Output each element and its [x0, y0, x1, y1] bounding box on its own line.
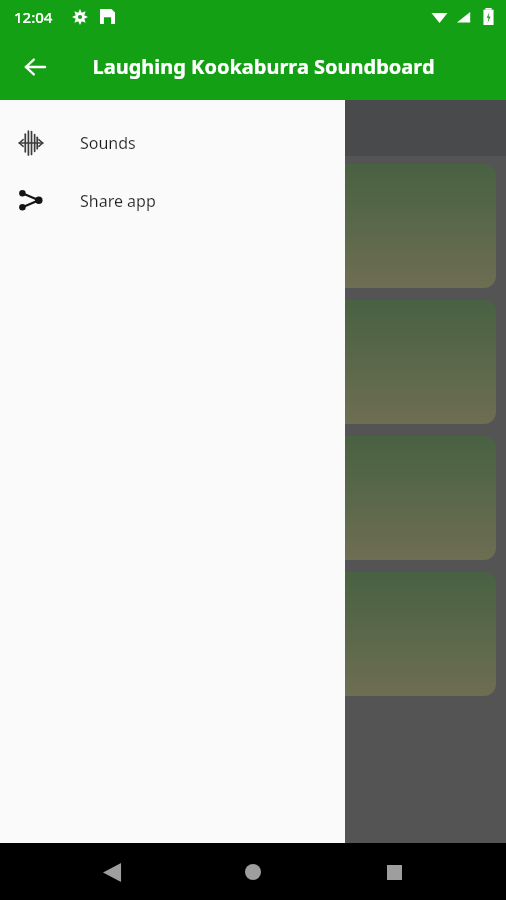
button[interactable]: Back [92, 852, 132, 892]
button[interactable]: 8 [258, 572, 496, 696]
button[interactable]: 6 [258, 436, 496, 560]
button[interactable]: Back [12, 44, 58, 90]
button[interactable]: Home [233, 852, 273, 892]
button[interactable]: 1 [10, 164, 248, 288]
staticText: Share app [80, 190, 156, 212]
staticText: Sounds [80, 132, 136, 154]
staticText: Laughing Kookaburra Soundboard [92, 53, 435, 80]
button[interactable]: Share app [0, 172, 345, 230]
button[interactable]: 4 [258, 300, 496, 424]
button[interactable]: 2 [258, 164, 496, 288]
staticText: 12:04 [14, 7, 53, 27]
button[interactable]: Sounds [0, 114, 345, 172]
button[interactable]: Recents [374, 852, 414, 892]
